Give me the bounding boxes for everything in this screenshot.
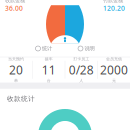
button[interactable]: 接车	[33, 57, 65, 83]
staticText: 120.20	[103, 4, 125, 13]
staticText: 统计	[42, 45, 52, 52]
staticText: 付款金额	[103, 0, 123, 4]
staticText: 当天预约	[8, 56, 24, 61]
staticText: 收款金额	[5, 0, 25, 4]
button[interactable]: 说明	[76, 44, 96, 53]
button[interactable]: 统计	[33, 44, 54, 53]
staticText: 11	[42, 62, 56, 78]
staticText: 收款统计	[7, 95, 35, 103]
staticText: 台	[47, 78, 51, 83]
staticText: 20	[9, 62, 23, 78]
button[interactable]: 打卡员工	[65, 57, 97, 83]
staticText: 36.00	[5, 4, 23, 13]
staticText: 说明	[84, 45, 94, 52]
staticText: 接车	[45, 56, 53, 61]
staticText: 0/28	[69, 62, 94, 78]
staticText: 人	[79, 78, 83, 83]
staticText: 2000	[100, 62, 128, 78]
button[interactable]: 会员充值	[98, 57, 130, 83]
staticText: 元	[112, 78, 116, 83]
staticText: 打卡员工	[73, 56, 89, 61]
button[interactable]: 当天预约	[0, 57, 32, 83]
staticText: 会员充值	[106, 56, 122, 61]
staticText: 单	[14, 78, 18, 83]
